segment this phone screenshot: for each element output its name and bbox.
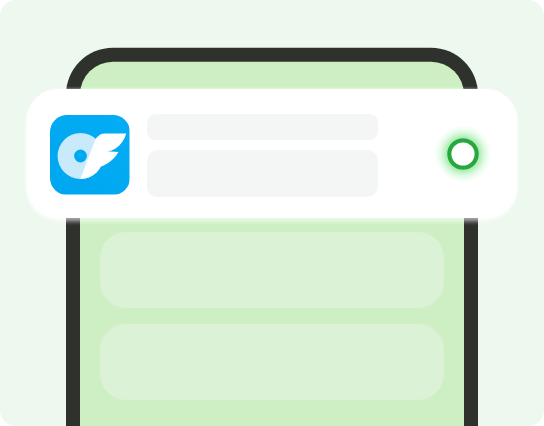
button[interactable]: Unread indicator	[433, 124, 493, 184]
button[interactable]: New notification from OnlyFans	[27, 89, 517, 218]
button[interactable]: OnlyFans app icon	[50, 115, 130, 195]
